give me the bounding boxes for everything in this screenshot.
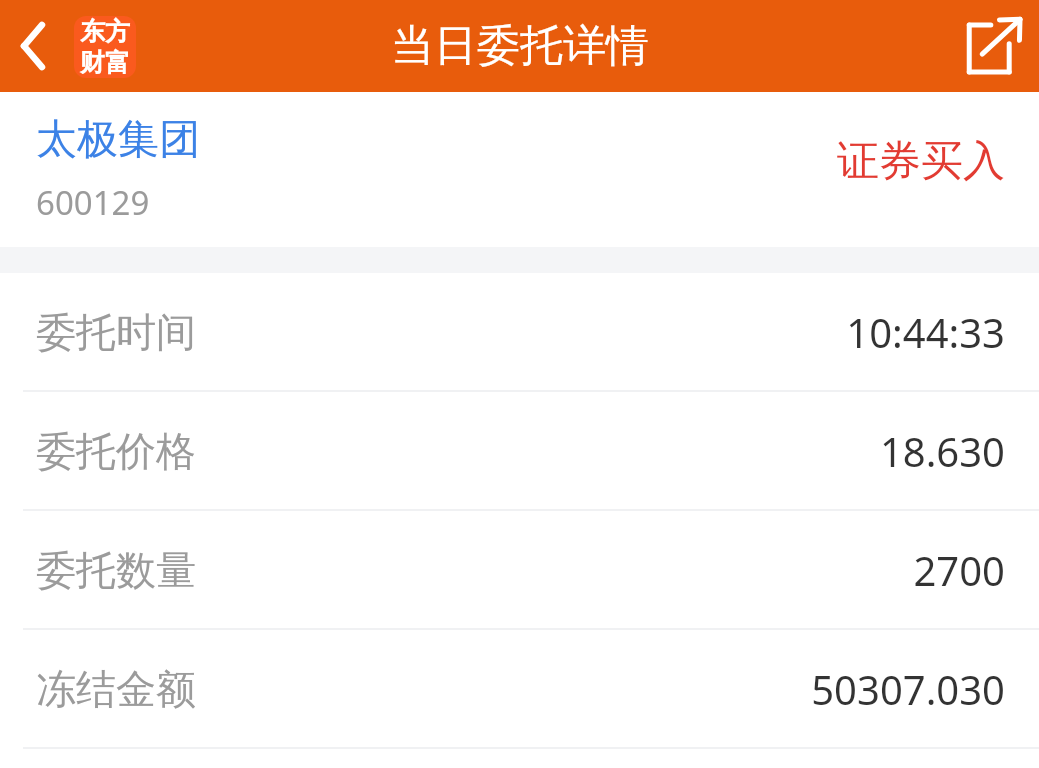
button[interactable]: 委托数量 bbox=[0, 511, 1039, 630]
staticText: 600129 bbox=[36, 180, 150, 225]
button[interactable]: Back bbox=[0, 0, 66, 92]
button[interactable]: 太极集团 bbox=[0, 92, 1039, 247]
button[interactable]: 东方财富 bbox=[74, 16, 136, 78]
staticText: 当日委托详情 bbox=[391, 19, 649, 73]
staticText: 18.630 bbox=[879, 424, 1005, 478]
staticText: 2700 bbox=[913, 543, 1005, 597]
staticText: 冻结金额 bbox=[36, 664, 196, 714]
staticText: 财富 bbox=[80, 47, 130, 78]
button[interactable]: 委托价格 bbox=[0, 392, 1039, 511]
staticText: 太极集团 bbox=[36, 114, 200, 166]
staticText: 委托价格 bbox=[36, 426, 196, 476]
staticText: 证券买入 bbox=[0, 135, 1005, 188]
staticText: 委托数量 bbox=[36, 545, 196, 595]
button[interactable]: 委托时间 bbox=[0, 273, 1039, 392]
staticText: 东方 bbox=[80, 16, 130, 47]
staticText: 10:44:33 bbox=[846, 305, 1005, 359]
staticText: 委托时间 bbox=[36, 307, 196, 357]
button[interactable]: 冻结金额 bbox=[0, 630, 1039, 749]
staticText: 50307.030 bbox=[811, 662, 1005, 716]
button[interactable]: Share bbox=[947, 0, 1039, 92]
